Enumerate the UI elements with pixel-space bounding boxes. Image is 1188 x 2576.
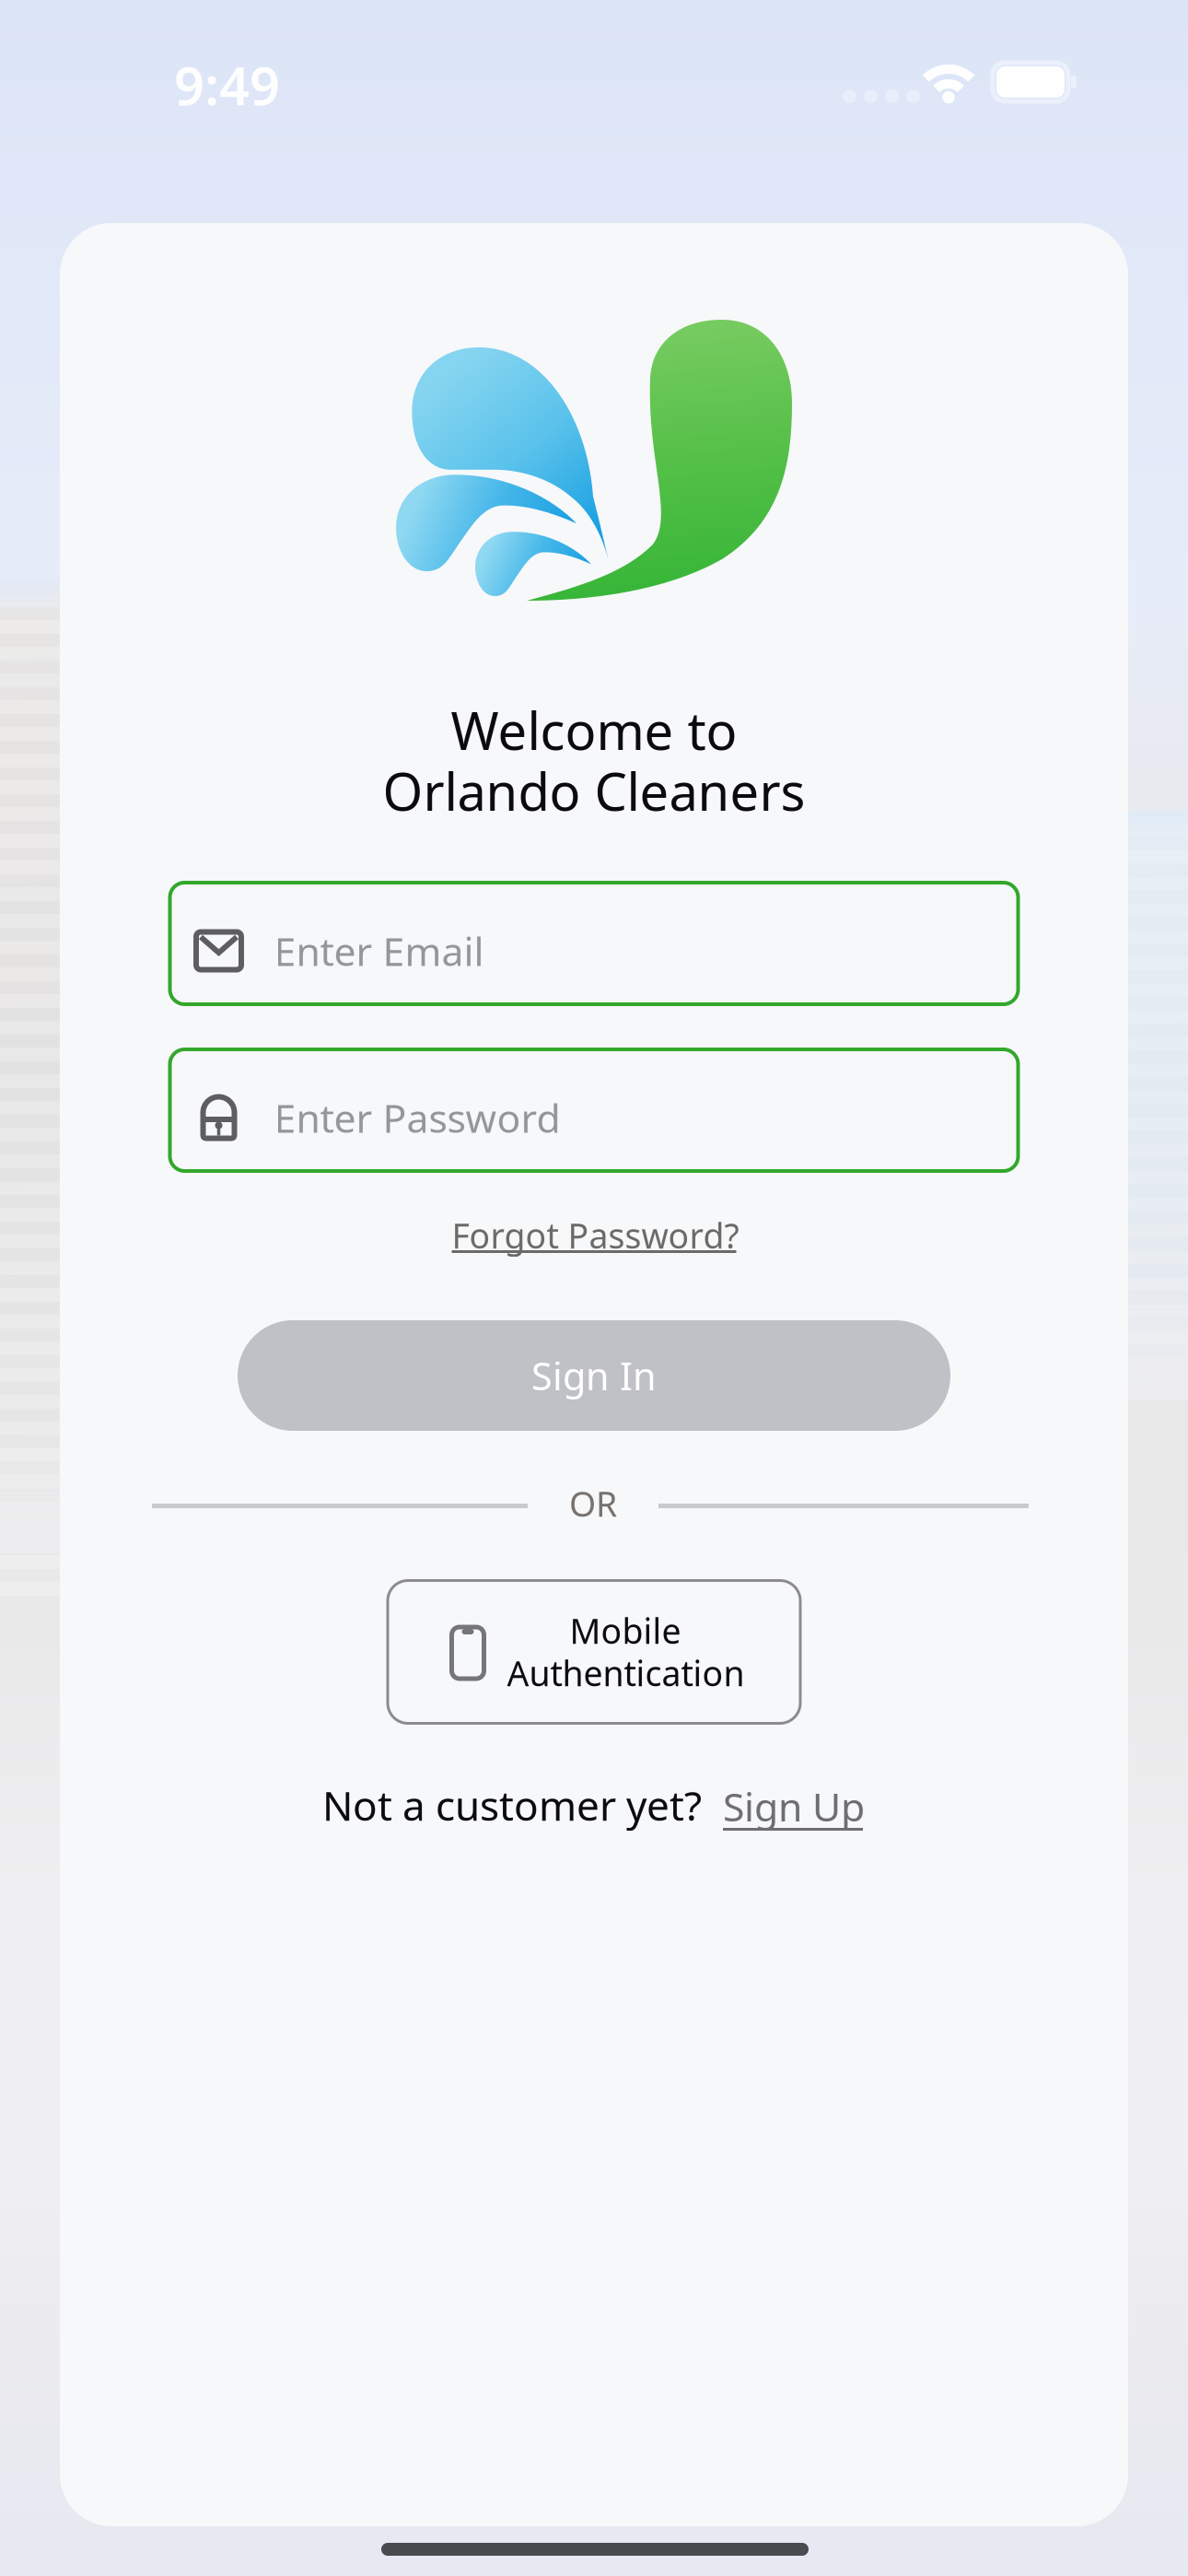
staticText: Enter Password	[274, 1091, 560, 1144]
staticText: Sign Up	[723, 1780, 865, 1832]
staticText: Welcome to	[451, 696, 737, 764]
button[interactable]: Forgot Password?	[435, 1201, 753, 1279]
staticText: Sign In	[531, 1350, 657, 1401]
button[interactable]: Sign In	[238, 1320, 950, 1431]
staticText: OR	[569, 1481, 617, 1526]
staticText: Orlando Cleaners	[383, 756, 805, 825]
staticText: Forgot Password?	[452, 1212, 739, 1258]
button[interactable]: Enter Email	[168, 881, 1020, 1006]
staticText: Not a customer yet?	[322, 1778, 702, 1832]
staticText: 9:49	[174, 50, 280, 120]
button[interactable]: Mobile	[386, 1579, 802, 1725]
button[interactable]: Enter Password	[168, 1048, 1020, 1173]
staticText: Mobile	[570, 1608, 681, 1653]
staticText: Authentication	[507, 1650, 745, 1696]
button[interactable]: Sign Up	[708, 1771, 883, 1852]
staticText: Enter Email	[274, 925, 484, 977]
